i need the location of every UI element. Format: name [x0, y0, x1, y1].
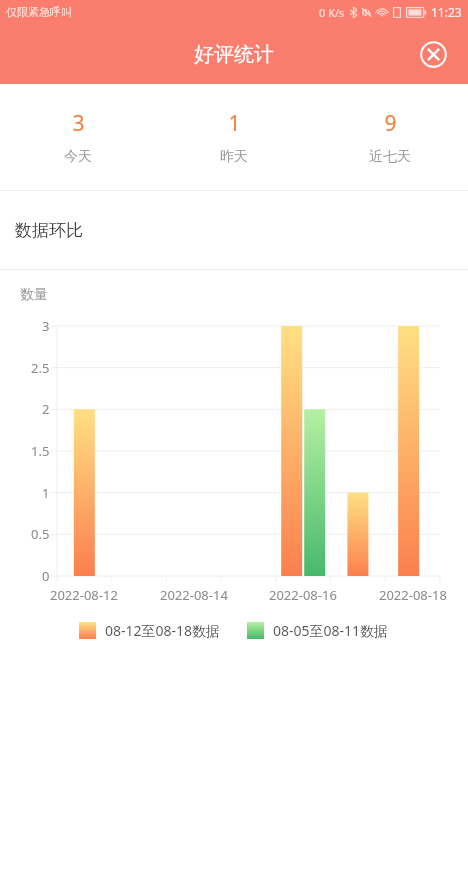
- staticText: 1.5: [31, 442, 50, 460]
- staticText: 数据环比: [15, 220, 83, 241]
- button[interactable]: 3: [0, 84, 156, 190]
- button[interactable]: 9: [312, 84, 468, 190]
- staticText: 数量: [20, 286, 48, 304]
- staticText: 0: [42, 567, 50, 585]
- staticText: 1: [42, 484, 50, 502]
- staticText: 1: [228, 109, 241, 138]
- staticText: 08-12至08-18数据: [105, 621, 221, 640]
- staticText: 仅限紧急呼叫: [6, 5, 72, 19]
- staticText: 好评统计: [194, 42, 274, 67]
- staticText: 0 K/s: [319, 5, 345, 20]
- staticText: 3: [42, 317, 50, 335]
- staticText: 3: [72, 109, 85, 138]
- staticText: 今天: [64, 148, 92, 166]
- staticText: 近七天: [369, 148, 411, 166]
- button[interactable]: 1: [156, 84, 312, 190]
- staticText: 2.5: [31, 359, 50, 377]
- staticText: 昨天: [220, 148, 248, 166]
- staticText: 11:23: [431, 4, 462, 20]
- staticText: 2022-08-12: [50, 586, 118, 604]
- button[interactable]: Close: [415, 36, 451, 72]
- staticText: 2: [42, 400, 50, 418]
- staticText: 0.5: [31, 525, 50, 543]
- staticText: 08-05至08-11数据: [273, 621, 389, 640]
- staticText: 2022-08-16: [269, 586, 337, 604]
- staticText: 2022-08-14: [160, 586, 228, 604]
- staticText: 9: [384, 109, 397, 138]
- staticText: 2022-08-18: [379, 586, 447, 604]
